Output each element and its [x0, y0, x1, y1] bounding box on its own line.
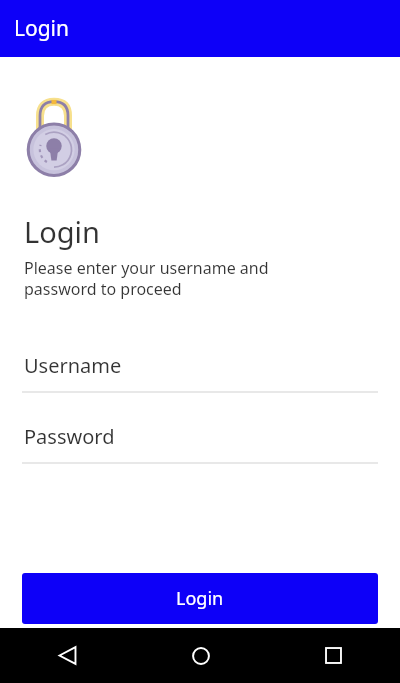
button[interactable]: Login [0, 0, 400, 57]
button[interactable]: Login [22, 573, 378, 624]
staticText: Password [24, 423, 115, 450]
other: Padlock [26, 99, 82, 177]
staticText: Login [176, 586, 224, 611]
button[interactable]: Username [0, 352, 400, 393]
button[interactable]: Home [134, 628, 267, 683]
button[interactable]: Recent apps [267, 628, 400, 683]
staticText: Login [14, 14, 70, 43]
staticText: Username [24, 352, 122, 379]
button[interactable]: Back [0, 628, 134, 683]
staticText: Login [24, 212, 100, 251]
button[interactable]: Password [0, 423, 400, 464]
staticText: Please enter your username and password … [24, 257, 269, 300]
